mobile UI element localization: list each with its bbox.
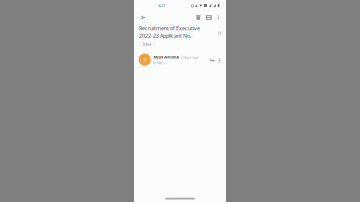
staticText: Inbox	[143, 42, 152, 46]
button[interactable]: Archive	[193, 13, 203, 22]
button[interactable]: Reply	[208, 55, 216, 66]
staticText: YASH ARORA	[153, 54, 179, 60]
staticText: 2022-23 Applicant No.·	[139, 32, 192, 39]
staticText: to Me ⌄	[153, 60, 167, 65]
button[interactable]: Mark as unread	[203, 13, 214, 22]
button[interactable]: More	[216, 55, 222, 66]
staticText: 4:21	[158, 3, 165, 8]
button[interactable]: More options	[214, 13, 222, 22]
button[interactable]: Back	[138, 13, 148, 22]
button[interactable]: Star	[216, 29, 224, 37]
staticText: 3 days ago	[181, 55, 199, 60]
staticText: Recruitment of Executive	[139, 24, 200, 32]
staticText: Y	[143, 55, 146, 64]
